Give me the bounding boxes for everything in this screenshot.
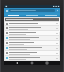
button[interactable]: More options [56, 9, 59, 12]
button[interactable]: Recent apps [45, 61, 49, 65]
button[interactable] [4, 13, 22, 17]
button[interactable] [5, 46, 59, 50]
button[interactable]: Menu [5, 9, 9, 13]
button[interactable] [5, 26, 59, 30]
button[interactable]: Home [30, 61, 34, 65]
button[interactable] [5, 51, 59, 55]
button[interactable] [5, 31, 59, 35]
button[interactable] [5, 56, 59, 60]
button[interactable] [5, 36, 59, 40]
button[interactable]: Search [9, 9, 55, 12]
button[interactable] [41, 13, 60, 17]
button[interactable]: Back [15, 61, 19, 65]
button[interactable] [5, 22, 59, 25]
button[interactable] [5, 41, 59, 45]
button[interactable] [22, 13, 41, 17]
button[interactable] [5, 18, 59, 21]
